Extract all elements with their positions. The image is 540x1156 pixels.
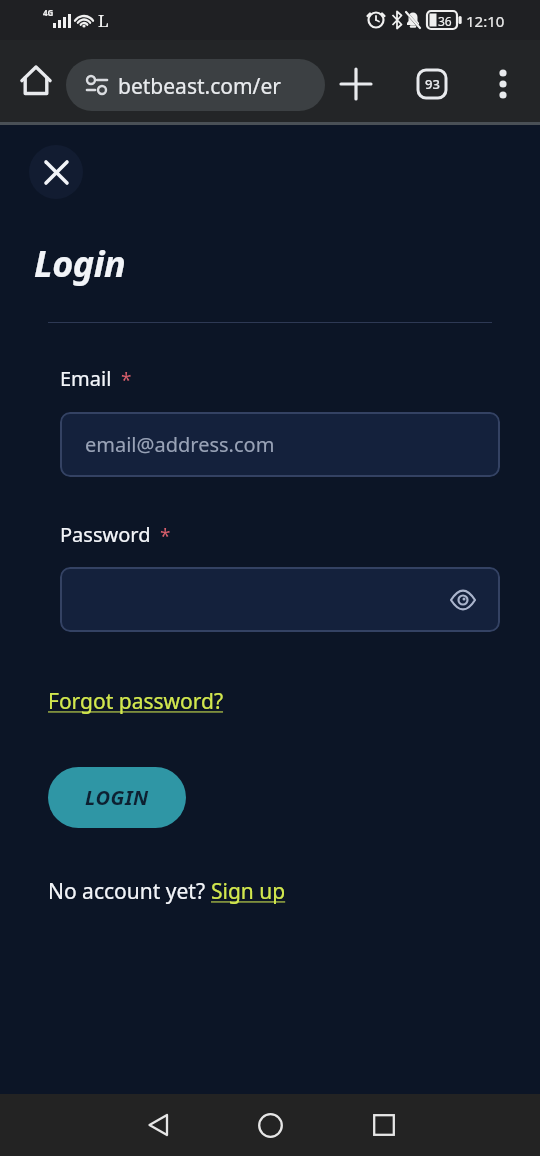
staticText: Login [34,239,126,288]
button[interactable] [481,62,525,106]
button[interactable] [29,145,83,199]
staticText: L [98,9,109,32]
button[interactable] [214,1094,327,1156]
staticText: * [160,523,171,549]
staticText: email@address.com [85,431,275,458]
button[interactable]: email@address.com [60,412,500,477]
button[interactable]: 93 [410,62,454,106]
button[interactable] [60,567,500,632]
staticText: LOGIN [85,784,149,811]
staticText: 93 [425,75,440,93]
staticText: 36 [438,13,452,29]
staticText: Email [60,365,112,392]
button[interactable] [327,1094,440,1156]
button[interactable] [334,62,378,106]
staticText: Password [60,521,151,548]
button[interactable]: betbeast.com/er [66,59,325,111]
button[interactable]: Forgot password? [48,687,224,716]
staticText: No account yet? [48,877,211,906]
button[interactable]: Sign up [211,877,286,906]
button[interactable] [14,58,58,102]
staticText: 12:10 [466,11,505,31]
staticText: * [121,367,132,393]
button[interactable]: LOGIN [48,767,186,828]
staticText: betbeast.com/er [118,72,281,101]
staticText: 4G [43,7,54,18]
button[interactable] [101,1094,214,1156]
